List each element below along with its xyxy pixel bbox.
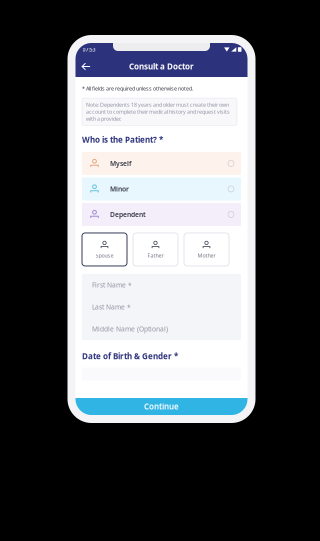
staticText: Note: Dependents 18 years and older must…	[86, 101, 230, 122]
button[interactable]: Minor	[82, 177, 241, 200]
button[interactable]: Father	[133, 233, 178, 266]
staticText: * All fields are required unless otherwi…	[82, 85, 193, 92]
staticText: Dependent	[110, 210, 146, 219]
button[interactable]: Continue	[75, 398, 247, 415]
button[interactable]: Spouse	[82, 233, 127, 266]
button[interactable]: Middle Name (Optional)	[82, 318, 241, 340]
staticText: Continue	[144, 401, 179, 412]
staticText: Consult a Doctor	[129, 61, 194, 72]
staticText: Date of Birth & Gender *	[82, 351, 178, 362]
staticText: Myself	[110, 159, 131, 168]
staticText: 07:53	[82, 46, 95, 53]
button[interactable]: Dependent	[82, 203, 241, 226]
staticText: Middle Name (Optional)	[92, 324, 168, 333]
staticText: Minor	[110, 184, 129, 193]
button[interactable]: Mother	[184, 233, 229, 266]
staticText: First Name *	[92, 280, 132, 289]
staticText: Last Name *	[92, 302, 131, 311]
staticText: Father	[147, 252, 163, 259]
button[interactable]: First Name *	[82, 274, 241, 296]
button[interactable]: Back	[75, 57, 96, 76]
staticText: Who is the Patient? *	[82, 134, 163, 145]
staticText: Mother	[197, 252, 215, 259]
button[interactable]: Myself	[82, 152, 241, 175]
staticText: Spouse	[95, 252, 113, 259]
button[interactable]: Last Name *	[82, 296, 241, 318]
